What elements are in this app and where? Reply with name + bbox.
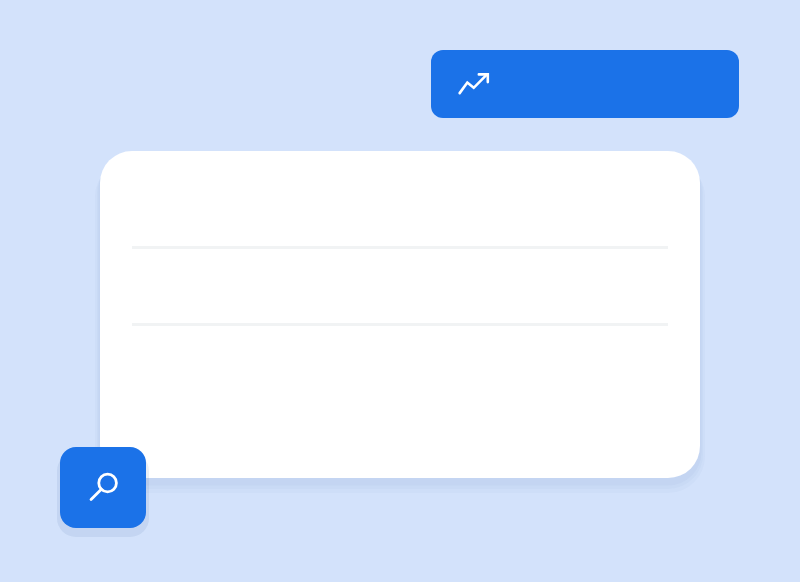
button[interactable]: Search (60, 447, 146, 528)
button[interactable] (100, 151, 700, 478)
button[interactable]: Trending (431, 50, 739, 118)
